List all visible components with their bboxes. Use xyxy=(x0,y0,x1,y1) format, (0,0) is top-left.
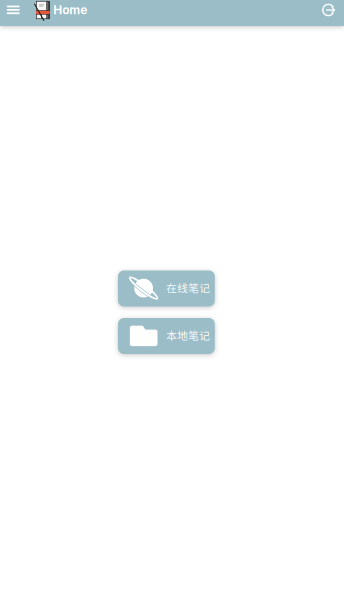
staticText: 本地笔记 xyxy=(166,327,210,343)
staticText: Home xyxy=(53,3,87,17)
button[interactable]: Menu xyxy=(0,0,26,20)
staticText: 在线笔记 xyxy=(166,280,210,295)
button[interactable]: 在线笔记 xyxy=(118,270,215,306)
button[interactable]: Log out xyxy=(315,0,343,20)
button[interactable]: 本地笔记 xyxy=(118,318,215,354)
